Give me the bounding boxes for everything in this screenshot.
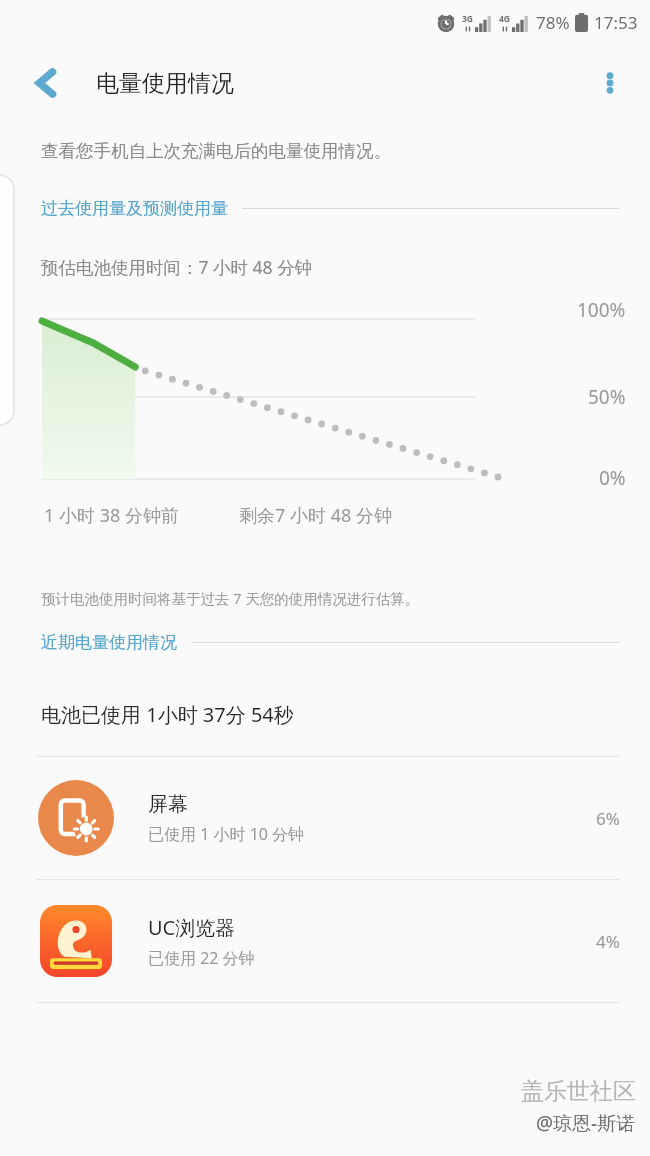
staticText: 剩余7 小时 48 分钟: [239, 503, 392, 528]
staticText: 电量使用情况: [96, 69, 234, 98]
staticText: 已使用 1 小时 10 分钟: [148, 823, 305, 845]
staticText: 预估电池使用时间：7 小时 48 分钟: [41, 255, 313, 279]
staticText: @琼恩-斯诺: [536, 1110, 636, 1136]
staticText: 100%: [577, 297, 626, 323]
staticText: 78%: [536, 11, 570, 34]
staticText: 4G: [499, 13, 511, 25]
staticText: 查看您手机自上次充满电后的电量使用情况。: [41, 140, 391, 162]
staticText: 过去使用量及预测使用量: [41, 198, 228, 219]
staticText: 0%: [599, 465, 626, 491]
staticText: 1 小时 38 分钟前: [44, 503, 179, 528]
staticText: UC浏览器: [148, 914, 236, 941]
staticText: 3G: [462, 13, 474, 25]
button[interactable]: UC浏览器: [0, 880, 650, 1002]
staticText: 17:53: [594, 11, 638, 34]
staticText: 近期电量使用情况: [41, 632, 177, 653]
staticText: 50%: [588, 384, 626, 410]
staticText: 预计电池使用时间将基于过去 7 天您的使用情况进行估算。: [41, 588, 420, 608]
staticText: 已使用 22 分钟: [148, 947, 255, 969]
button[interactable]: Back: [20, 57, 72, 109]
staticText: 屏幕: [148, 792, 188, 817]
staticText: 4%: [596, 930, 620, 953]
staticText: 电池已使用 1小时 37分 54秒: [41, 701, 294, 728]
staticText: 6%: [596, 807, 620, 830]
button[interactable]: More options: [584, 57, 636, 109]
button[interactable]: 屏幕: [0, 757, 650, 879]
staticText: 盖乐世社区: [521, 1077, 636, 1106]
